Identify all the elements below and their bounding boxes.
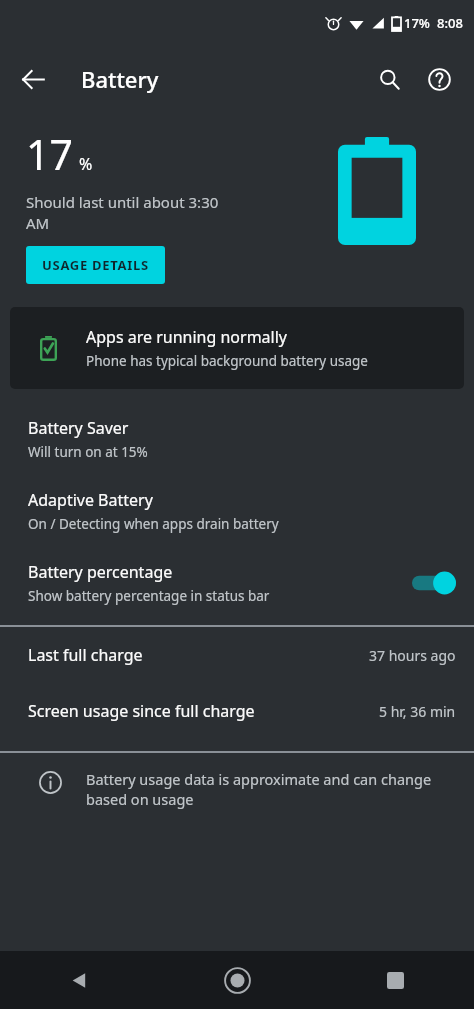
staticText: Screen usage since full charge	[28, 700, 255, 722]
staticText: 5 hr, 36 min	[379, 702, 456, 721]
staticText: 17%	[404, 14, 430, 32]
staticText: Last full charge	[28, 644, 143, 666]
button[interactable]: Help	[416, 56, 462, 102]
staticText: Phone has typical background battery usa…	[86, 352, 368, 370]
button[interactable]: Adaptive Battery	[0, 475, 474, 547]
staticText: %	[79, 153, 93, 175]
staticText: Apps are running normally	[86, 326, 287, 348]
button[interactable]: Home	[158, 951, 316, 1009]
staticText: Battery percentage	[28, 561, 173, 583]
staticText: Will turn on at 15%	[28, 443, 148, 461]
staticText: Adaptive Battery	[28, 489, 153, 511]
staticText: 17	[26, 126, 73, 182]
staticText: 37 hours ago	[369, 646, 456, 665]
staticText: On / Detecting when apps drain battery	[28, 515, 279, 533]
button[interactable]: Recent apps	[316, 951, 474, 1009]
button[interactable]: USAGE DETAILS	[26, 246, 165, 284]
button[interactable]: Battery Saver	[0, 403, 474, 475]
button[interactable]: Apps are running normally	[10, 307, 464, 389]
staticText: Battery	[81, 64, 159, 94]
staticText: Battery Saver	[28, 417, 129, 439]
button[interactable]: Last full charge	[0, 627, 474, 683]
button[interactable]: Screen usage since full charge	[0, 683, 474, 739]
button[interactable]: Back	[0, 951, 158, 1009]
button[interactable]: Battery percentage	[0, 547, 474, 619]
button[interactable]: Search	[366, 56, 412, 102]
button[interactable]: Back	[10, 56, 56, 102]
staticText: Battery usage data is approximate and ca…	[86, 769, 450, 810]
staticText: Should last until about 3:30 AM	[26, 192, 241, 234]
staticText: 8:08	[437, 14, 463, 32]
staticText: Show battery percentage in status bar	[28, 587, 270, 605]
staticText: USAGE DETAILS	[42, 256, 149, 274]
